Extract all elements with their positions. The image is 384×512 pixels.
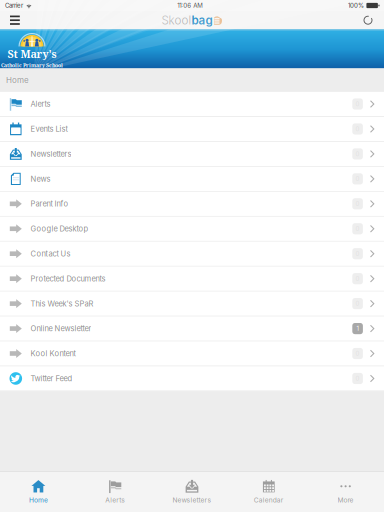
staticText: Google Desktop <box>30 224 88 233</box>
staticText: Alerts <box>30 99 50 109</box>
button[interactable]: This Week's SPaR <box>0 291 384 316</box>
staticText: 0 <box>356 375 360 382</box>
staticText: 0 <box>356 100 360 108</box>
staticText: 100% <box>348 2 364 9</box>
button[interactable]: Alerts <box>0 92 384 117</box>
staticText: 0 <box>356 300 360 307</box>
button[interactable]: Google Desktop <box>0 217 384 242</box>
button[interactable]: Twitter Feed <box>0 366 384 391</box>
staticText: Parent Info <box>30 199 68 208</box>
staticText: 11:06 AM <box>177 2 203 9</box>
button[interactable]: Contact Us <box>0 242 384 266</box>
button[interactable]: Alerts <box>77 472 154 512</box>
staticText: This Week's SPaR <box>30 299 93 308</box>
staticText: 1 <box>357 325 359 332</box>
button[interactable]: Refresh <box>356 11 380 29</box>
button[interactable]: Menu <box>3 11 27 29</box>
staticText: 0 <box>356 350 360 357</box>
staticText: 0 <box>356 125 360 133</box>
staticText: Kool Kontent <box>30 349 75 358</box>
staticText: Twitter Feed <box>30 374 72 383</box>
staticText: 0 <box>356 175 360 183</box>
staticText: Catholic Primary School <box>1 62 63 69</box>
button[interactable]: Newsletters <box>0 142 384 167</box>
button[interactable]: Protected Documents <box>0 266 384 291</box>
button[interactable]: News <box>0 167 384 192</box>
staticText: News <box>30 174 50 183</box>
staticText: Skool <box>161 13 191 27</box>
staticText: 0 <box>356 150 360 158</box>
staticText: Calendar <box>254 496 284 504</box>
staticText: More <box>338 496 354 504</box>
staticText: Home <box>6 75 29 85</box>
button[interactable]: Parent Info <box>0 192 384 217</box>
button[interactable]: Newsletters <box>154 472 230 512</box>
staticText: Online Newsletter <box>30 324 91 333</box>
button[interactable]: Online Newsletter <box>0 316 384 341</box>
staticText: Home <box>29 496 48 504</box>
staticText: 0 <box>356 275 360 282</box>
staticText: Contact Us <box>30 249 70 258</box>
button[interactable]: More <box>307 472 384 512</box>
staticText: Newsletters <box>30 149 71 158</box>
staticText: St Mary's <box>7 46 56 61</box>
button[interactable]: Calendar <box>230 472 307 512</box>
staticText: Events List <box>30 124 67 134</box>
staticText: Newsletters <box>172 496 211 504</box>
staticText: 0 <box>356 250 360 257</box>
staticText: 0 <box>356 225 360 232</box>
button[interactable]: Events List <box>0 117 384 142</box>
staticText: Protected Documents <box>30 274 105 283</box>
staticText: 0 <box>356 200 360 207</box>
staticText: Alerts <box>105 496 125 504</box>
button[interactable]: Home <box>0 472 77 512</box>
staticText: bag <box>191 13 212 27</box>
staticText: Carrier <box>5 2 23 9</box>
button[interactable]: Kool Kontent <box>0 341 384 366</box>
